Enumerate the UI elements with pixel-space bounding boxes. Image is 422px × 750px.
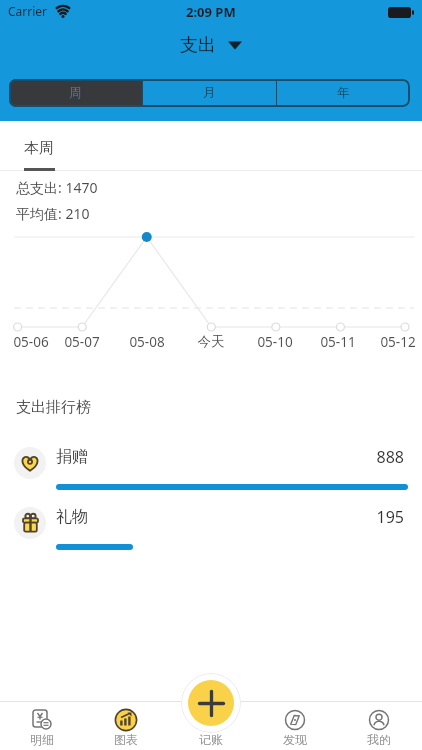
staticText: 支出排行榜 [16,398,91,417]
button[interactable]: 明细 [12,708,72,750]
staticText: 记账 [181,732,241,747]
button[interactable]: 捐赠 [0,440,422,496]
button[interactable]: 图表 [96,708,156,750]
staticText: 05-07 [56,333,108,351]
staticText: 今天 [185,333,237,350]
staticText: 05-06 [5,333,57,351]
staticText: 支出 [180,34,216,57]
staticText: 礼物 [56,507,88,527]
staticText: 平均值: 210 [16,204,90,223]
staticText: 05-08 [121,333,173,351]
staticText: 图表 [114,732,138,747]
staticText: 05-10 [249,333,301,351]
button[interactable] [188,680,234,726]
staticText: 月 [203,85,216,101]
button[interactable]: 支出 [0,31,422,59]
staticText: 总支出: 1470 [16,178,98,197]
staticText: 捐赠 [56,447,88,467]
staticText: 发现 [283,732,307,747]
button[interactable]: 年 [277,79,410,107]
button[interactable]: 本周 [14,122,74,170]
staticText: 周 [69,85,82,101]
staticText: 05-12 [372,333,422,351]
button[interactable]: 周 [9,79,142,107]
staticText: 888 [0,446,404,468]
button[interactable]: 发现 [265,708,325,750]
staticText: 2:09 PM [186,3,236,21]
staticText: 05-11 [312,333,364,351]
staticText: 195 [0,506,404,528]
staticText: 明细 [30,732,54,747]
button[interactable]: 我的 [349,708,409,750]
button[interactable]: 月 [143,79,276,107]
staticText: 我的 [367,732,391,747]
staticText: 本周 [24,139,54,158]
button[interactable]: 礼物 [0,500,422,556]
staticText: Carrier [8,3,48,19]
staticText: 年 [337,85,350,101]
